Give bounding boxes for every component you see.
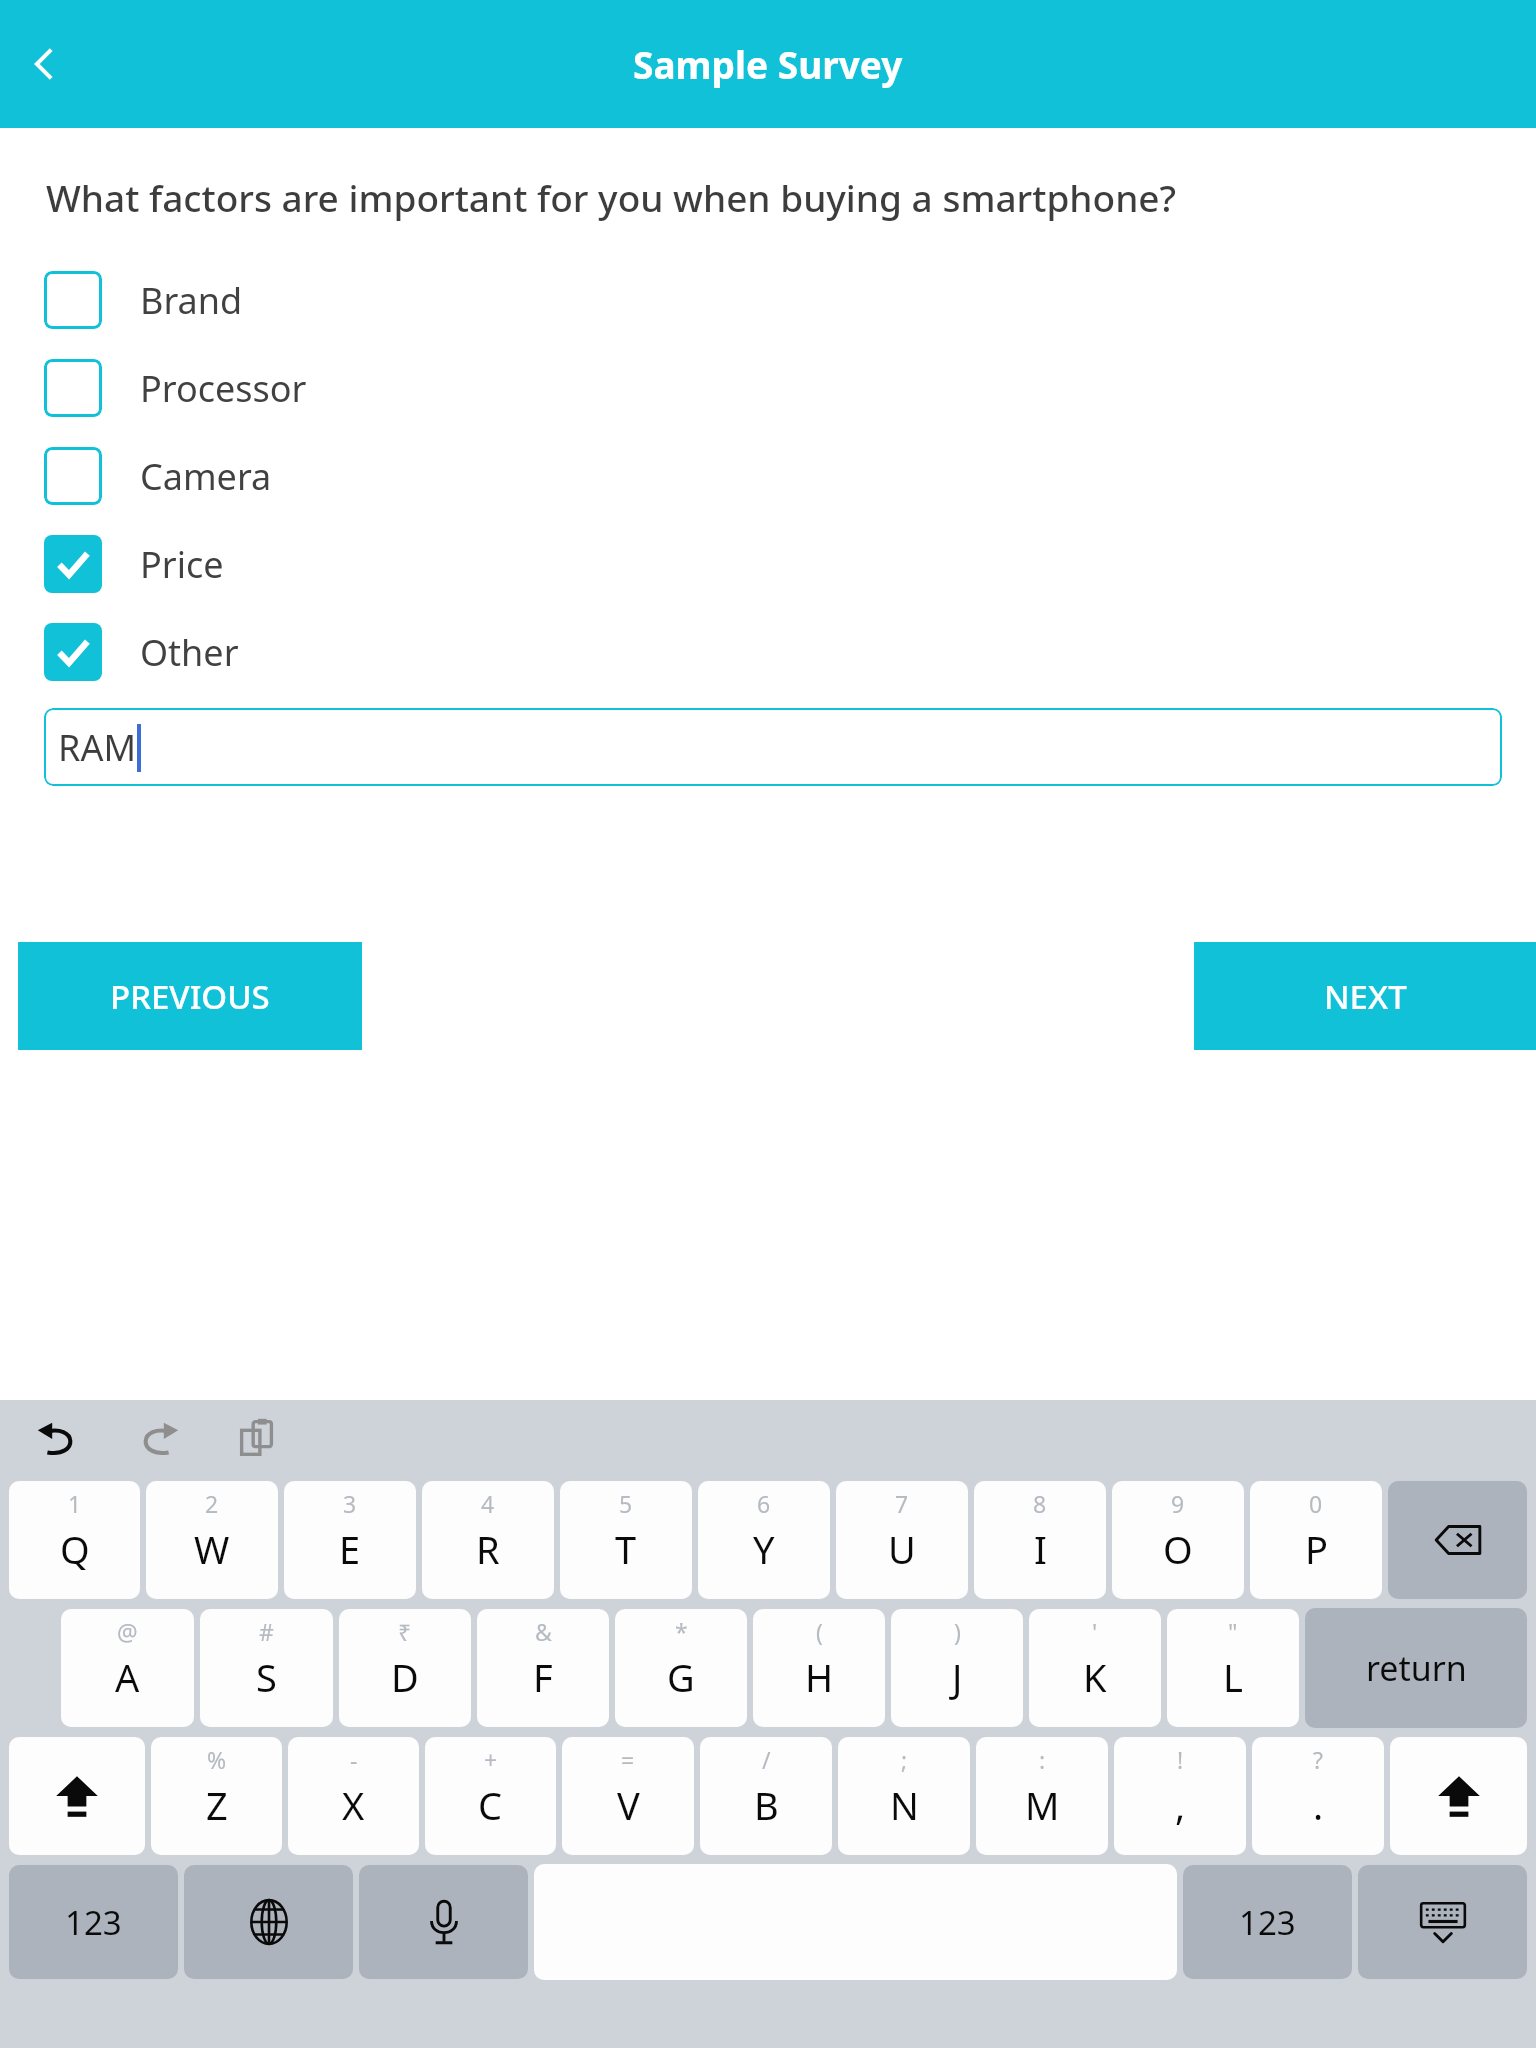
button[interactable]: PREVIOUS (18, 942, 362, 1050)
staticText: @ (117, 1616, 138, 1647)
staticText: Brand (140, 276, 243, 325)
staticText: K (1083, 1651, 1107, 1703)
button[interactable]: return (1305, 1608, 1527, 1728)
staticText: A (115, 1651, 140, 1703)
button[interactable]: Voice input (359, 1865, 528, 1979)
staticText: H (805, 1651, 834, 1703)
button[interactable]: - (288, 1737, 419, 1855)
button[interactable]: Change language (184, 1865, 353, 1979)
button[interactable]: 123 (9, 1865, 178, 1979)
staticText: , (1175, 1779, 1186, 1831)
button[interactable]: ? (1252, 1737, 1384, 1855)
staticText: 123 (65, 1900, 122, 1945)
button[interactable]: * (615, 1609, 747, 1727)
staticText: V (617, 1779, 640, 1831)
staticText: 5 (619, 1488, 633, 1519)
staticText: B (754, 1779, 779, 1831)
button[interactable]: 0 (1250, 1481, 1382, 1599)
button[interactable]: Shift (1390, 1737, 1527, 1855)
button[interactable]: ₹ (339, 1609, 471, 1727)
button[interactable]: / (700, 1737, 832, 1855)
staticText: P (1305, 1523, 1328, 1575)
staticText: M (1025, 1779, 1060, 1831)
button[interactable]: Hide keyboard (1358, 1865, 1527, 1979)
button[interactable]: + (425, 1737, 556, 1855)
button[interactable]: 123 (1183, 1865, 1352, 1979)
staticText: 6 (757, 1488, 771, 1519)
staticText: - (350, 1744, 358, 1775)
button[interactable]: NEXT (1194, 942, 1536, 1050)
button[interactable]: RAM (44, 708, 1502, 786)
staticText: 0 (1309, 1488, 1323, 1519)
staticText: L (1223, 1651, 1243, 1703)
staticText: / (762, 1744, 771, 1775)
staticText: W (194, 1523, 230, 1575)
staticText: ! (1177, 1744, 1184, 1775)
button[interactable]: 2 (146, 1481, 278, 1599)
staticText: 1 (68, 1488, 82, 1519)
staticText: : (1039, 1744, 1046, 1775)
staticText: ; (901, 1744, 908, 1775)
button[interactable]: Brand (0, 256, 1536, 344)
staticText: X (342, 1779, 365, 1831)
button[interactable]: # (200, 1609, 333, 1727)
button[interactable]: ' (1029, 1609, 1161, 1727)
button[interactable]: 1 (9, 1481, 140, 1599)
button[interactable]: 9 (1112, 1481, 1244, 1599)
staticText: S (256, 1651, 277, 1703)
staticText: J (952, 1651, 963, 1703)
button[interactable]: Processor (0, 344, 1536, 432)
button[interactable]: ! (1114, 1737, 1246, 1855)
button[interactable]: Backspace (1388, 1481, 1527, 1599)
staticText: NEXT (1324, 974, 1407, 1019)
button[interactable]: % (151, 1737, 282, 1855)
staticText: 7 (895, 1488, 909, 1519)
button[interactable]: 3 (284, 1481, 416, 1599)
button[interactable]: Price (0, 520, 1536, 608)
staticText: * (675, 1616, 688, 1647)
staticText: # (259, 1616, 274, 1647)
button[interactable]: ( (753, 1609, 885, 1727)
staticText: D (391, 1651, 419, 1703)
staticText: return (1366, 1645, 1467, 1691)
staticText: ₹ (398, 1616, 412, 1647)
button[interactable]: ; (838, 1737, 970, 1855)
staticText: 123 (1239, 1900, 1296, 1945)
button[interactable]: " (1167, 1609, 1299, 1727)
button[interactable]: = (562, 1737, 694, 1855)
staticText: PREVIOUS (110, 974, 270, 1019)
button[interactable]: ) (891, 1609, 1023, 1727)
staticText: Sample Survey (633, 39, 903, 89)
button[interactable]: 6 (698, 1481, 830, 1599)
staticText: Y (753, 1523, 775, 1575)
button[interactable]: Other (0, 608, 1536, 696)
button[interactable]: 4 (422, 1481, 554, 1599)
button[interactable]: : (976, 1737, 1108, 1855)
staticText: T (615, 1523, 637, 1575)
staticText: " (1228, 1616, 1238, 1647)
staticText: ' (1092, 1616, 1098, 1647)
staticText: 2 (205, 1488, 219, 1519)
button[interactable]: Back (6, 26, 82, 102)
staticText: E (339, 1523, 361, 1575)
button[interactable]: Undo (26, 1407, 88, 1469)
staticText: Q (60, 1523, 90, 1575)
button[interactable]: & (477, 1609, 609, 1727)
staticText: N (890, 1779, 919, 1831)
button[interactable]: 8 (974, 1481, 1106, 1599)
staticText: C (478, 1779, 503, 1831)
staticText: 3 (343, 1488, 357, 1519)
staticText: U (888, 1523, 916, 1575)
button[interactable]: @ (61, 1609, 194, 1727)
button[interactable]: Redo (128, 1407, 190, 1469)
button[interactable]: Paste (226, 1407, 288, 1469)
button[interactable]: Camera (0, 432, 1536, 520)
button[interactable]: 5 (560, 1481, 692, 1599)
button[interactable]: 7 (836, 1481, 968, 1599)
staticText: % (207, 1744, 227, 1775)
staticText: What factors are important for you when … (46, 172, 1177, 222)
button[interactable]: Shift (9, 1737, 145, 1855)
staticText: I (1034, 1523, 1047, 1575)
staticText: & (535, 1616, 552, 1647)
